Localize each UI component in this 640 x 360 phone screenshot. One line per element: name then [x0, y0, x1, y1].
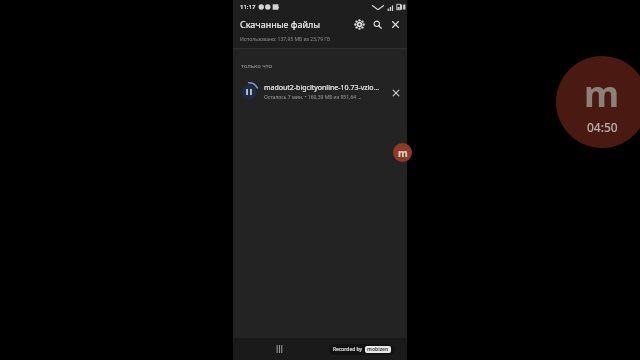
staticText: mobizen [367, 346, 389, 353]
button[interactable]: Close [387, 16, 403, 32]
staticText: 04:50 [587, 119, 618, 135]
button[interactable]: Search [369, 16, 385, 32]
button[interactable]: Cancel download [388, 85, 403, 100]
staticText: только что [241, 62, 273, 70]
staticText: Осталось 7 мин. • 160,39 МБ из 951,64 ..… [264, 94, 362, 101]
staticText: Использовано: 137,95 МБ из 23,79 ГБ [240, 36, 330, 43]
button[interactable]: madout2-bigcityonline-10.73-vzlom... [233, 80, 407, 104]
staticText: 11:17 [240, 3, 256, 11]
button[interactable]: Mobizen recorder [393, 143, 412, 162]
button[interactable]: Settings [351, 16, 367, 32]
staticText: madout2-bigcityonline-10.73-vzlom... [264, 83, 385, 93]
staticText: m [398, 146, 408, 160]
staticText: Recorded by [333, 346, 363, 353]
staticText: m [584, 69, 620, 118]
button[interactable]: Recents [271, 341, 287, 357]
staticText: Скачанные файлы [240, 18, 321, 30]
